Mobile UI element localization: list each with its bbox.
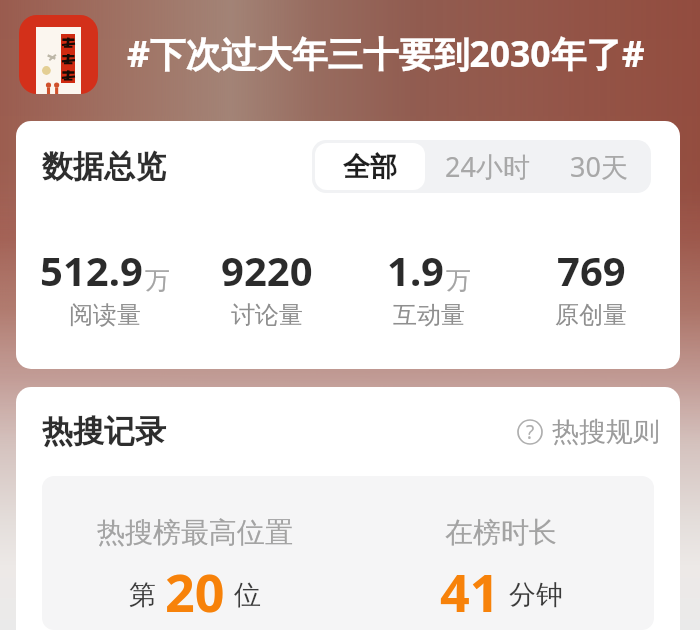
staticText: 万 <box>446 265 471 296</box>
staticText: #下次过大年三十要到2030年了# <box>127 29 645 77</box>
staticText: 30天 <box>570 148 628 185</box>
staticText: 位 <box>234 578 261 612</box>
button[interactable]: 全部 <box>315 143 425 190</box>
staticText: 全部 <box>343 150 397 184</box>
staticText: 热搜规则 <box>552 415 660 449</box>
button[interactable]: 30天 <box>546 140 651 193</box>
staticText: 万 <box>145 265 170 296</box>
staticText: 24小时 <box>445 148 530 185</box>
staticText: 讨论量 <box>231 300 303 330</box>
staticText: 热搜记录 <box>42 412 166 451</box>
staticText: 分钟 <box>509 578 563 612</box>
staticText: 互动量 <box>393 300 465 330</box>
staticText: ? <box>526 419 535 445</box>
staticText: 1.9 <box>387 243 444 297</box>
staticText: 512.9 <box>40 243 143 297</box>
staticText: 9220 <box>221 243 313 297</box>
staticText: 20 <box>165 556 225 627</box>
button[interactable]: 24小时 <box>428 140 546 193</box>
staticText: 在榜时长 <box>445 515 557 550</box>
button[interactable]: Topic icon <box>19 15 98 94</box>
staticText: 41 <box>440 556 500 627</box>
staticText: 数据总览 <box>42 147 166 186</box>
staticText: 热搜榜最高位置 <box>97 515 293 550</box>
staticText: 769 <box>557 243 626 297</box>
staticText: 原创量 <box>555 300 627 330</box>
staticText: 阅读量 <box>69 300 141 330</box>
staticText: 第 <box>129 578 156 612</box>
button[interactable]: 热搜规则 <box>517 415 660 449</box>
